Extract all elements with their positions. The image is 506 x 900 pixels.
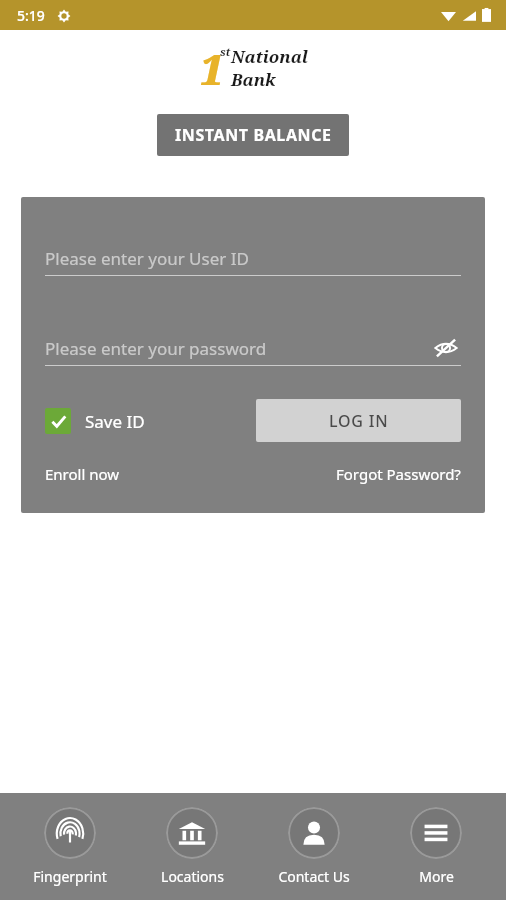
staticText: Please enter your password (45, 337, 267, 360)
button[interactable]: Enroll now (45, 464, 120, 484)
staticText: More (419, 867, 454, 886)
button[interactable]: Show password (431, 333, 461, 363)
staticText: National (231, 45, 309, 68)
staticText: Fingerprint (33, 867, 107, 886)
button[interactable]: Please enter your User ID (45, 241, 461, 275)
staticText: 1 (199, 40, 223, 90)
staticText: Forgot Password? (336, 464, 461, 484)
staticText: Bank (231, 68, 276, 91)
button[interactable]: INSTANT BALANCE (157, 114, 349, 156)
button[interactable]: More (384, 805, 488, 888)
staticText: Enroll now (45, 464, 120, 484)
button[interactable]: Forgot Password? (336, 464, 461, 484)
button[interactable]: LOG IN (256, 399, 461, 442)
staticText: LOG IN (329, 410, 389, 432)
button[interactable]: Please enter your password (45, 331, 461, 365)
staticText: Locations (161, 867, 224, 886)
staticText: INSTANT BALANCE (175, 124, 332, 146)
staticText: st (220, 44, 231, 59)
staticText: Please enter your User ID (45, 247, 249, 270)
staticText: Save ID (85, 410, 145, 433)
staticText: Contact Us (278, 867, 350, 886)
button[interactable]: Save ID (45, 408, 145, 434)
button[interactable]: Locations (140, 805, 244, 888)
staticText: 5:19 (17, 6, 45, 25)
button[interactable]: Fingerprint (18, 805, 122, 888)
button[interactable]: Contact Us (262, 805, 366, 888)
